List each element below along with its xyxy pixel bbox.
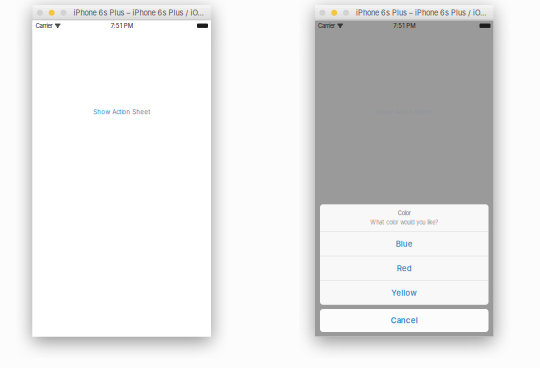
button[interactable]: Minimize bbox=[49, 10, 55, 16]
staticText: 7:51 PM bbox=[111, 22, 133, 29]
button[interactable]: Close bbox=[319, 10, 325, 16]
staticText: Carrier bbox=[35, 22, 52, 29]
button[interactable]: Cancel bbox=[320, 309, 488, 332]
staticText: Blue bbox=[396, 239, 413, 248]
staticText: Color bbox=[398, 210, 411, 217]
button[interactable]: Show Action Sheet bbox=[32, 107, 211, 117]
staticText: What color would you like? bbox=[370, 219, 438, 226]
button[interactable]: Red bbox=[320, 256, 488, 280]
button[interactable]: Blue bbox=[320, 232, 488, 256]
staticText: Carrier bbox=[318, 22, 335, 29]
staticText: Cancel bbox=[391, 316, 418, 325]
staticText: Red bbox=[397, 263, 412, 273]
button[interactable]: Show Action Sheet bbox=[315, 107, 493, 117]
button[interactable]: Zoom bbox=[60, 10, 66, 16]
staticText: iPhone 6s Plus – iPhone 6s Plus / iO… bbox=[73, 8, 203, 17]
staticText: Yellow bbox=[391, 288, 417, 297]
button[interactable]: Yellow bbox=[320, 281, 488, 305]
button[interactable]: Zoom bbox=[343, 10, 349, 16]
button[interactable]: Close bbox=[37, 10, 43, 16]
staticText: 7:51 PM bbox=[393, 22, 415, 29]
button[interactable]: Minimize bbox=[331, 10, 337, 16]
staticText: iPhone 6s Plus – iPhone 6s Plus / iO… bbox=[356, 8, 486, 17]
staticText: Show Action Sheet bbox=[93, 108, 150, 116]
